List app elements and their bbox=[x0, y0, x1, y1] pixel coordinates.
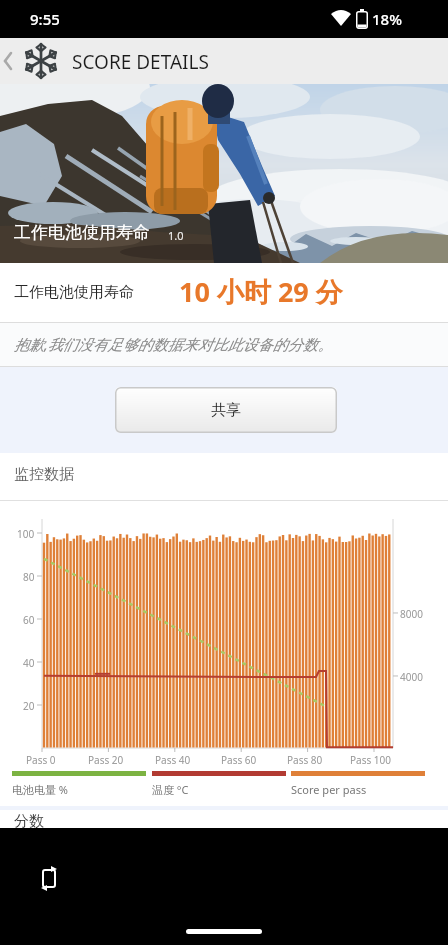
staticText: 温度 °C bbox=[152, 782, 189, 797]
staticText: 分数 bbox=[14, 812, 44, 830]
staticText: 共享 bbox=[211, 401, 241, 420]
staticText: 100 bbox=[17, 527, 35, 541]
staticText: 1.0 bbox=[168, 228, 184, 243]
button[interactable]: SCORE DETAILS bbox=[0, 38, 448, 84]
staticText: 80 bbox=[23, 570, 35, 584]
staticText: Pass 20 bbox=[88, 753, 124, 767]
staticText: Pass 40 bbox=[155, 753, 191, 767]
staticText: 4000 bbox=[400, 670, 423, 684]
staticText: Score per pass bbox=[291, 782, 367, 797]
staticText: 电池电量 % bbox=[12, 782, 69, 797]
staticText: 9:55 bbox=[30, 9, 60, 29]
button[interactable]: 共享 bbox=[115, 387, 337, 433]
staticText: 抱歉,我们没有足够的数据来对比此设备的分数。 bbox=[14, 334, 333, 354]
staticText: 18% bbox=[372, 9, 402, 29]
staticText: Pass 60 bbox=[221, 753, 257, 767]
staticText: 监控数据 bbox=[14, 465, 74, 484]
staticText: 10 小时 29 分 bbox=[179, 273, 343, 310]
staticText: Pass 0 bbox=[26, 753, 56, 767]
staticText: SCORE DETAILS bbox=[72, 49, 209, 75]
staticText: Pass 100 bbox=[350, 753, 391, 767]
staticText: 工作电池使用寿命 bbox=[14, 222, 150, 243]
staticText: 40 bbox=[23, 656, 35, 670]
staticText: Pass 80 bbox=[287, 753, 323, 767]
staticText: 8000 bbox=[400, 607, 423, 621]
staticText: 60 bbox=[23, 613, 35, 627]
staticText: 工作电池使用寿命 bbox=[14, 283, 134, 302]
staticText: 20 bbox=[23, 699, 35, 713]
